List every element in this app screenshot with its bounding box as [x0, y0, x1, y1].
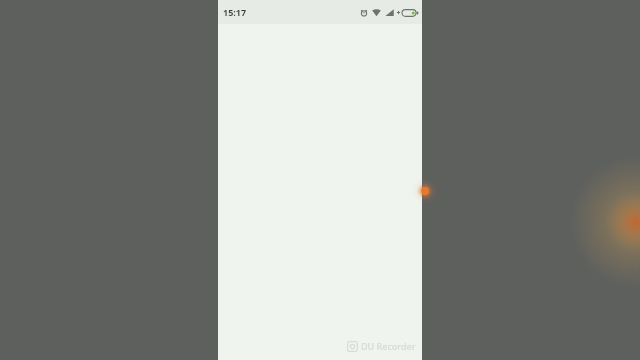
button[interactable]: Floating action button [412, 178, 438, 204]
staticText: 15:17 [223, 6, 247, 18]
staticText: DU Recorder [361, 340, 416, 352]
